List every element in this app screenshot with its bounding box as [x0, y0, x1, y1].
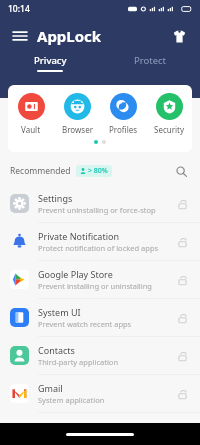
staticText: Settings	[38, 192, 73, 204]
staticText: Vault	[21, 124, 41, 135]
staticText: Profiles	[109, 124, 138, 135]
staticText: Google Play Store	[38, 268, 113, 280]
button[interactable]: Contacts	[0, 337, 200, 375]
button[interactable]: Menu	[9, 25, 31, 47]
button[interactable]: System UI	[0, 299, 200, 337]
staticText: Protect	[134, 54, 167, 67]
button[interactable]: Lock Contacts	[174, 348, 190, 364]
staticText: System application	[38, 395, 105, 405]
button[interactable]: Privacy	[0, 54, 100, 72]
staticText: Third-party application	[38, 357, 119, 367]
button[interactable]: Lock Google Play Store	[174, 272, 190, 288]
button[interactable]: Gmail	[0, 375, 200, 413]
button[interactable]: Profiles	[100, 93, 146, 135]
staticText: System UI	[38, 306, 81, 318]
button[interactable]: Google Play Store	[0, 261, 200, 299]
button[interactable]: Settings	[0, 185, 200, 223]
staticText: Prevent watch recent apps	[38, 319, 132, 329]
staticText: > 80%	[88, 166, 108, 176]
button[interactable]: Lock Gmail	[174, 386, 190, 402]
staticText: Prevent installing or uninstalling	[38, 281, 152, 291]
button[interactable]: Lock Settings	[174, 196, 190, 212]
staticText: Gmail	[38, 382, 63, 394]
button[interactable]: Theme	[167, 24, 191, 48]
button[interactable]: Security	[146, 93, 192, 135]
staticText: Contacts	[38, 344, 75, 356]
button[interactable]: Lock System UI	[174, 310, 190, 326]
button[interactable]: Protect	[100, 54, 200, 67]
button[interactable]: Vault	[8, 93, 54, 135]
button[interactable]: Search	[172, 163, 190, 179]
staticText: 10:14	[8, 3, 30, 15]
staticText: Browser	[62, 124, 93, 135]
button[interactable]: Lock Private Notification	[174, 234, 190, 250]
button[interactable]: Browser	[54, 93, 100, 135]
staticText: AppLock	[37, 26, 102, 46]
staticText: Prevent uninstalling or force-stop	[38, 205, 156, 215]
button[interactable]: > 80%	[80, 166, 108, 176]
button[interactable]: Private Notification	[0, 223, 200, 261]
staticText: Protect notification of locked apps	[38, 243, 159, 253]
staticText: Private Notification	[38, 230, 119, 242]
staticText: Recommended	[10, 165, 71, 177]
staticText: Privacy	[34, 54, 67, 67]
staticText: Security	[154, 124, 185, 135]
